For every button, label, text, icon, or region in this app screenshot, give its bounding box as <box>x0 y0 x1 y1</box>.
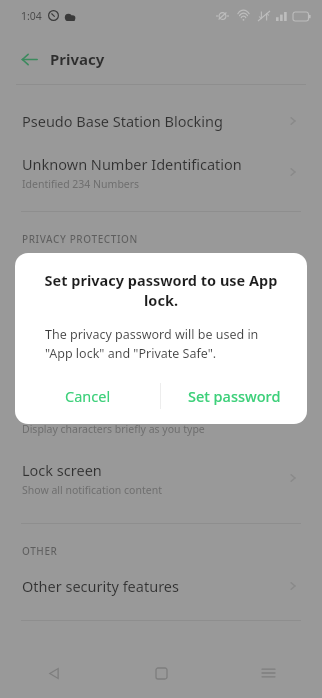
staticText: The privacy password will be used in "Ap… <box>45 326 283 362</box>
staticText: PRIVACY PROTECTION <box>22 232 138 246</box>
button[interactable]: Other security features <box>0 564 322 608</box>
staticText: Other security features <box>22 576 179 596</box>
staticText: Privacy <box>50 49 105 69</box>
staticText: Show all notification content <box>22 483 162 497</box>
staticText: Unknown Number Identification <box>22 154 242 174</box>
button[interactable]: Cancel <box>15 377 160 415</box>
staticText: Cancel <box>65 386 111 406</box>
button[interactable]: Set password <box>161 377 307 415</box>
staticText: 1:04 <box>21 9 42 23</box>
staticText: Display characters briefly as you type <box>22 422 205 436</box>
button[interactable]: Unknown Number Identification <box>0 146 322 198</box>
staticText: OTHER <box>22 544 58 558</box>
button[interactable]: Lock screen <box>0 452 322 504</box>
staticText: Lock screen <box>22 460 102 480</box>
staticText: Set password <box>188 386 281 406</box>
staticText: Identified 234 Numbers <box>22 177 140 191</box>
staticText: Set privacy password to use App lock. <box>41 270 281 310</box>
button[interactable]: Pseudo Base Station Blocking <box>0 98 322 144</box>
button[interactable]: Back <box>12 42 46 76</box>
staticText: Pseudo Base Station Blocking <box>22 111 223 131</box>
